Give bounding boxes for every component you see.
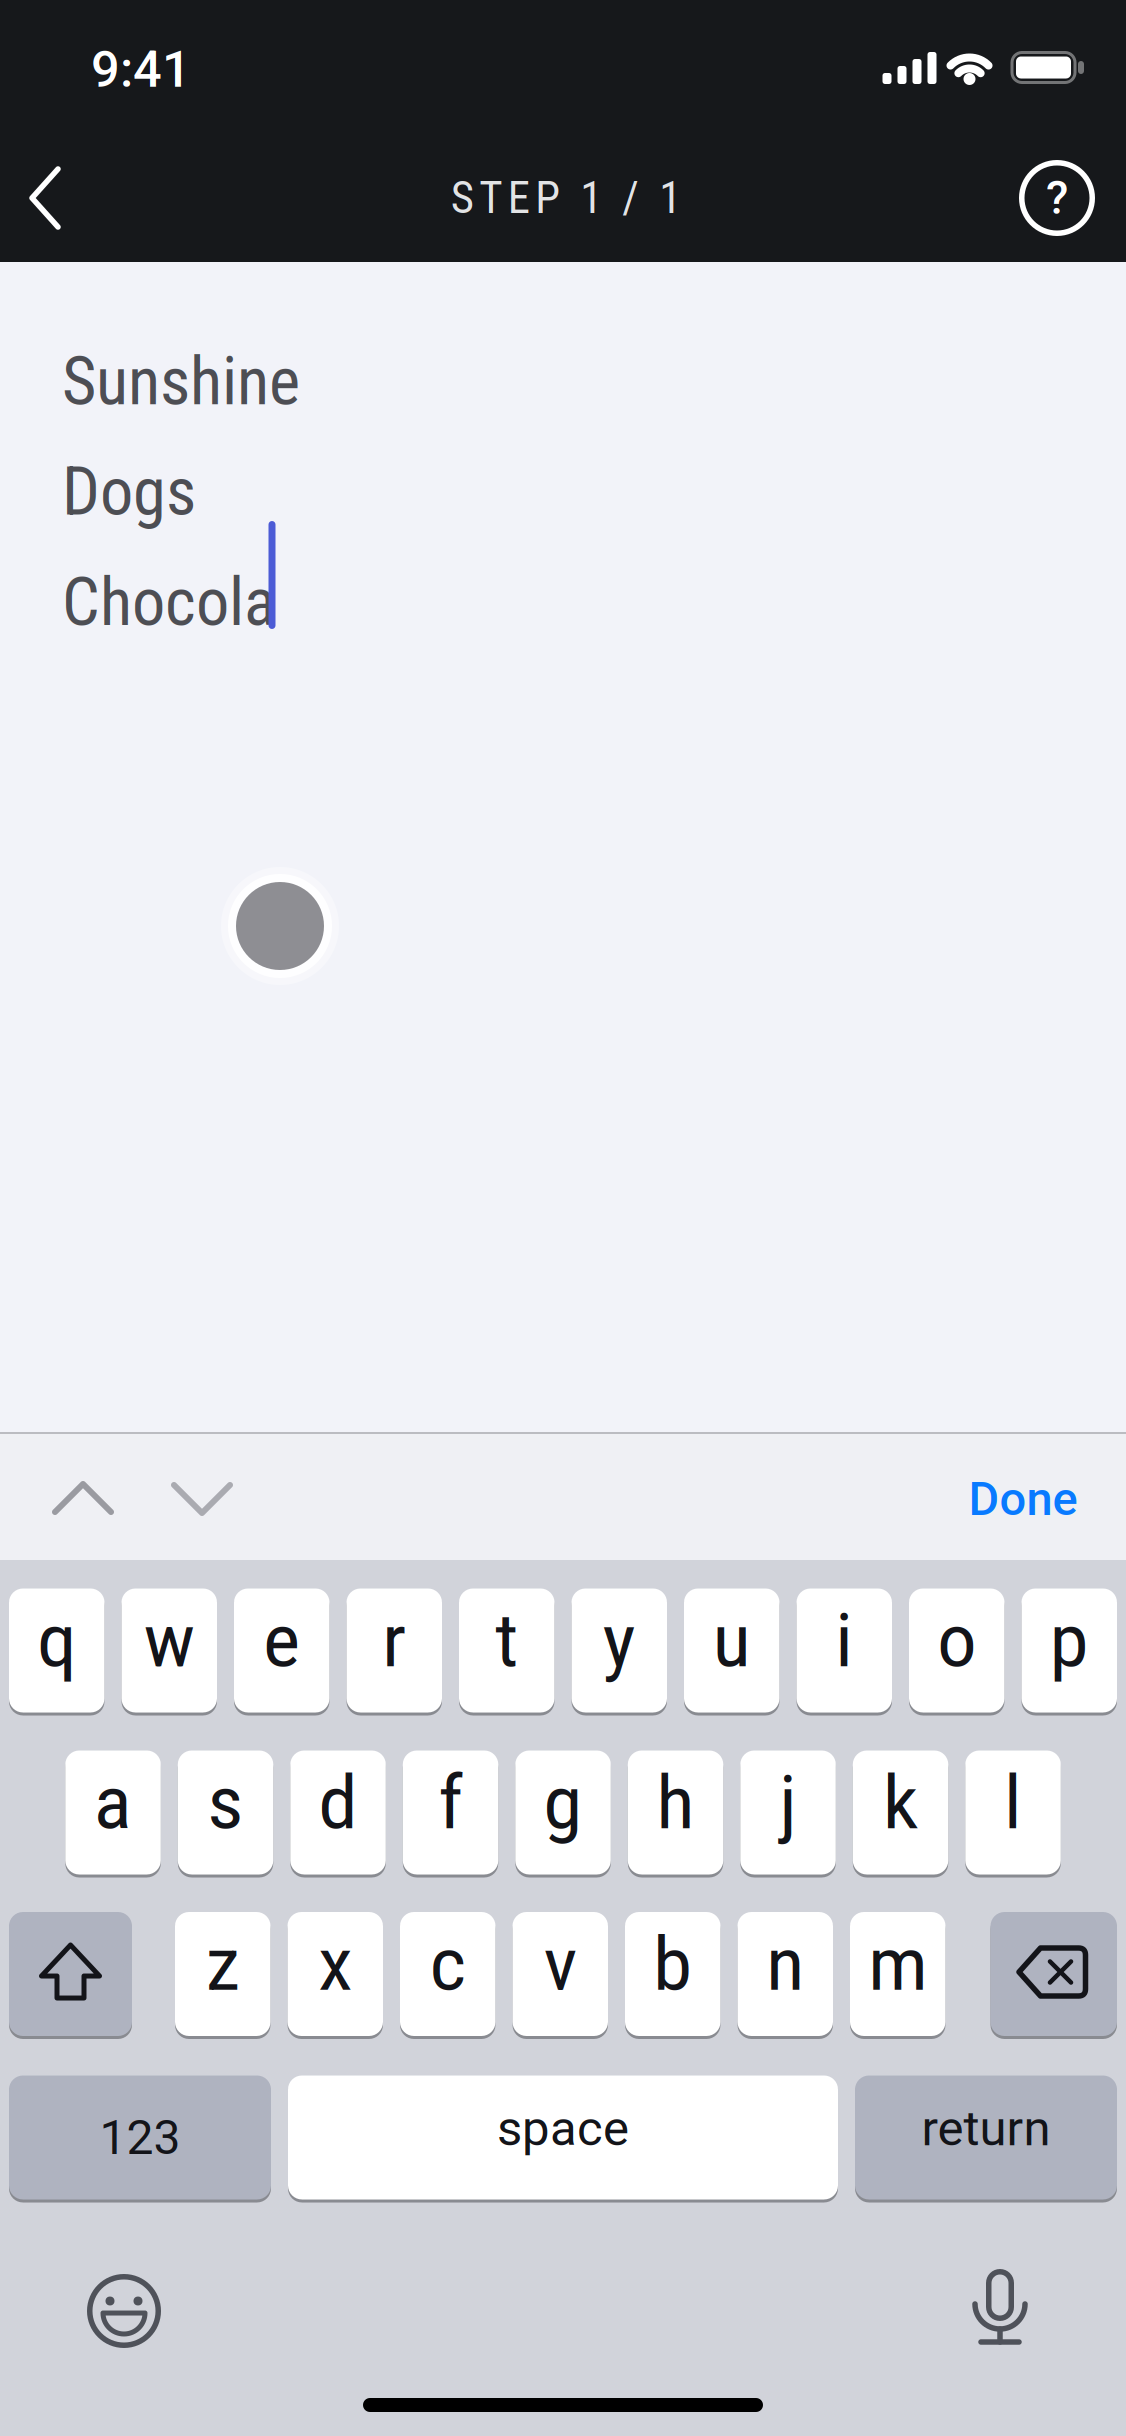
button[interactable]: r: [346, 1587, 442, 1714]
staticText: g: [543, 1759, 582, 1846]
staticText: p: [1050, 1597, 1089, 1684]
button[interactable]: g: [515, 1749, 611, 1876]
button[interactable]: q: [9, 1587, 104, 1714]
staticText: t: [495, 1597, 518, 1684]
button[interactable]: l: [965, 1749, 1061, 1876]
button[interactable]: t: [459, 1587, 554, 1714]
staticText: return: [921, 2100, 1050, 2157]
button[interactable]: Delete: [990, 1910, 1117, 2037]
staticText: Dogs: [62, 453, 196, 531]
button[interactable]: f: [403, 1749, 498, 1876]
staticText: c: [430, 1920, 466, 2008]
button[interactable]: u: [684, 1587, 779, 1714]
button[interactable]: Emoji: [74, 2261, 174, 2361]
button[interactable]: h: [628, 1749, 723, 1876]
button[interactable]: return: [855, 2074, 1117, 2201]
staticText: Chocola: [62, 564, 276, 641]
staticText: 123: [99, 2109, 180, 2166]
staticText: w: [144, 1597, 195, 1684]
staticText: z: [206, 1920, 240, 2008]
staticText: f: [439, 1759, 463, 1846]
staticText: 1: [659, 172, 681, 224]
staticText: n: [766, 1920, 804, 2008]
staticText: ?: [1046, 171, 1068, 225]
staticText: 9:41: [91, 40, 191, 99]
staticText: y: [603, 1597, 636, 1684]
button[interactable]: s: [178, 1749, 273, 1876]
staticText: s: [208, 1759, 244, 1846]
button[interactable]: Done: [933, 1449, 1113, 1549]
button[interactable]: 123: [9, 2074, 271, 2201]
button[interactable]: j: [740, 1749, 836, 1876]
button[interactable]: space: [288, 2074, 838, 2201]
staticText: a: [94, 1759, 132, 1846]
button[interactable]: i: [796, 1587, 892, 1714]
button[interactable]: Back: [13, 153, 81, 243]
staticText: d: [319, 1759, 358, 1846]
staticText: space: [497, 2100, 629, 2157]
staticText: v: [544, 1920, 577, 2008]
staticText: x: [318, 1920, 352, 2008]
staticText: /: [622, 172, 639, 224]
staticText: m: [868, 1920, 927, 2008]
button[interactable]: Shift: [9, 1910, 132, 2037]
staticText: o: [937, 1597, 976, 1684]
staticText: E: [508, 172, 530, 224]
staticText: Sunshine: [62, 343, 300, 420]
staticText: r: [382, 1597, 406, 1684]
staticText: Done: [968, 1471, 1077, 1527]
staticText: q: [37, 1597, 76, 1684]
button[interactable]: k: [853, 1749, 948, 1876]
button[interactable]: x: [287, 1910, 383, 2037]
button[interactable]: Help: [1012, 153, 1102, 243]
button[interactable]: b: [625, 1910, 720, 2037]
button[interactable]: e: [234, 1587, 329, 1714]
staticText: l: [1004, 1759, 1022, 1846]
button[interactable]: y: [571, 1587, 667, 1714]
staticText: e: [263, 1597, 300, 1684]
button[interactable]: m: [850, 1910, 945, 2037]
staticText: j: [779, 1759, 796, 1846]
button[interactable]: v: [512, 1910, 608, 2037]
staticText: u: [713, 1597, 751, 1684]
button[interactable]: z: [175, 1910, 270, 2037]
button[interactable]: d: [290, 1749, 386, 1876]
staticText: k: [883, 1759, 918, 1846]
staticText: T: [479, 172, 502, 224]
staticText: S: [451, 172, 474, 224]
staticText: P: [535, 172, 560, 224]
button[interactable]: Previous field: [33, 1448, 133, 1548]
button[interactable]: o: [909, 1587, 1004, 1714]
button[interactable]: p: [1021, 1587, 1117, 1714]
staticText: i: [835, 1597, 853, 1684]
staticText: 1: [580, 172, 602, 224]
button[interactable]: a: [65, 1749, 161, 1876]
button[interactable]: w: [121, 1587, 217, 1714]
button[interactable]: n: [737, 1910, 833, 2037]
staticText: b: [653, 1920, 692, 2008]
button[interactable]: Dictation: [950, 2262, 1050, 2362]
button[interactable]: Next field: [152, 1449, 252, 1549]
button[interactable]: c: [400, 1910, 495, 2037]
staticText: h: [656, 1759, 694, 1846]
